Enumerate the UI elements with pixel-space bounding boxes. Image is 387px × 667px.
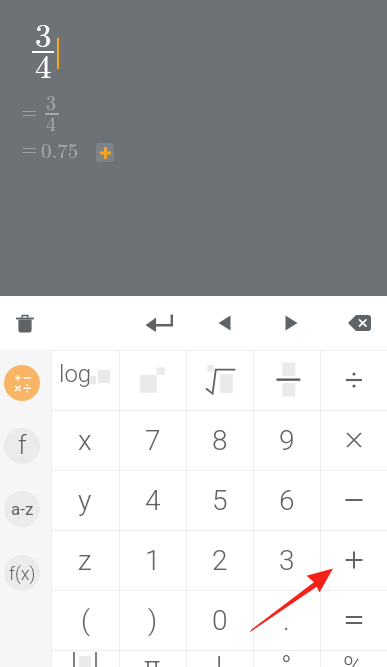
button[interactable]: 2 <box>186 530 253 590</box>
staticText: log <box>59 360 92 388</box>
button[interactable]: 8 <box>186 410 253 470</box>
button[interactable]: y <box>51 470 119 530</box>
button[interactable]: 1 <box>119 530 186 590</box>
button[interactable]: equals <box>320 590 387 650</box>
staticText: 0 <box>212 604 228 637</box>
button[interactable]: 7 <box>119 410 186 470</box>
button[interactable]: ( <box>51 590 119 650</box>
staticText: 7 <box>145 424 161 457</box>
staticText: a-z <box>11 499 34 519</box>
staticText: 4 <box>46 108 56 136</box>
button[interactable]: 4 <box>119 470 186 530</box>
button[interactable]: square root <box>186 350 253 410</box>
button[interactable]: absolute value <box>51 650 119 667</box>
button[interactable]: % <box>320 650 387 667</box>
button[interactable]: Move right <box>269 296 314 350</box>
button[interactable]: 3 <box>253 530 320 590</box>
staticText: 8 <box>212 424 228 457</box>
button[interactable]: x <box>51 410 119 470</box>
button[interactable]: operator keyboard <box>4 365 40 401</box>
button[interactable]: power <box>119 350 186 410</box>
button[interactable]: . <box>253 590 320 650</box>
staticText: . <box>283 604 290 637</box>
button[interactable]: divide <box>320 350 387 410</box>
staticText: = <box>21 95 38 125</box>
staticText: 3 <box>279 544 295 577</box>
button[interactable]: function keyboard <box>4 428 40 464</box>
staticText: ) <box>148 604 158 637</box>
staticText: y <box>78 484 92 517</box>
staticText: 3 <box>35 10 52 57</box>
staticText: 4 <box>145 484 161 517</box>
button[interactable]: ) <box>119 590 186 650</box>
staticText: ! <box>216 650 223 667</box>
button[interactable]: ! <box>186 650 253 667</box>
button[interactable]: fraction <box>253 350 320 410</box>
staticText: = <box>21 132 38 162</box>
button[interactable]: logarithm <box>51 350 119 410</box>
staticText: 6 <box>279 484 295 517</box>
button[interactable]: Backspace <box>335 296 383 350</box>
button[interactable]: Clear <box>2 296 48 350</box>
button[interactable]: Add to history <box>96 143 114 162</box>
button[interactable]: letter keyboard <box>4 491 40 527</box>
staticText: z <box>78 544 92 577</box>
button[interactable]: Move left <box>202 296 247 350</box>
staticText: π <box>144 650 161 667</box>
staticText: x <box>78 424 92 457</box>
button[interactable]: multiply <box>320 410 387 470</box>
button[interactable]: 6 <box>253 470 320 530</box>
staticText: 1 <box>145 544 161 577</box>
button[interactable]: minus <box>320 470 387 530</box>
staticText: 3 <box>46 87 56 115</box>
staticText: ( <box>81 604 90 637</box>
button[interactable]: 5 <box>186 470 253 530</box>
button[interactable]: ° <box>253 650 320 667</box>
button[interactable]: pi <box>119 650 186 667</box>
staticText: 9 <box>279 424 295 457</box>
button[interactable]: 9 <box>253 410 320 470</box>
button[interactable]: 0 <box>186 590 253 650</box>
button[interactable]: Enter <box>133 296 185 350</box>
staticText: 2 <box>212 544 228 577</box>
staticText: 5 <box>212 484 228 517</box>
staticText: f <box>18 430 27 460</box>
staticText: 0.75 <box>41 134 79 164</box>
staticText: 4 <box>35 41 52 88</box>
staticText: ° <box>281 650 292 667</box>
button[interactable]: z <box>51 530 119 590</box>
staticText: f(x) <box>9 563 36 584</box>
staticText: % <box>343 650 364 667</box>
button[interactable]: user function keyboard <box>4 555 40 591</box>
button[interactable]: plus <box>320 530 387 590</box>
